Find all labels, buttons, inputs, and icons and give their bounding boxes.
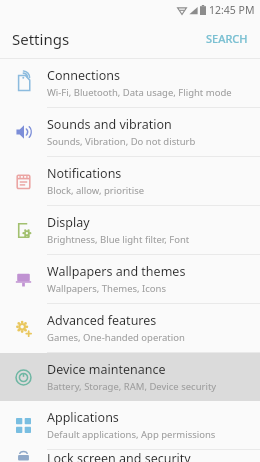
- staticText: 12:45 PM: [209, 3, 255, 17]
- staticText: Notifications: [47, 165, 122, 182]
- other: Advanced features: [15, 320, 32, 337]
- other: Notifications: [15, 173, 32, 190]
- staticText: Wi-Fi, Bluetooth, Data usage, Flight mod…: [47, 86, 232, 99]
- button[interactable]: Wallpapers and themes: [0, 255, 260, 303]
- staticText: SEARCH: [206, 31, 248, 46]
- staticText: Block, allow, prioritise: [47, 184, 145, 197]
- button[interactable]: SEARCH: [194, 22, 260, 55]
- staticText: Games, One-handed operation: [47, 331, 185, 344]
- staticText: Display: [47, 214, 90, 231]
- staticText: Wallpapers, Themes, Icons: [47, 282, 167, 295]
- button[interactable]: Device maintenance: [0, 353, 260, 401]
- other: Lock screen and security: [15, 450, 32, 462]
- staticText: Device maintenance: [47, 361, 166, 378]
- staticText: Advanced features: [47, 312, 157, 329]
- staticText: Battery, Storage, RAM, Device security: [47, 380, 217, 393]
- other: Device maintenance: [15, 369, 32, 386]
- button[interactable]: Advanced features: [0, 304, 260, 352]
- staticText: Applications: [47, 409, 119, 426]
- other: Display: [15, 222, 32, 239]
- staticText: Sounds and vibration: [47, 116, 172, 133]
- staticText: Settings: [12, 29, 70, 49]
- staticText: Sounds, Vibration, Do not disturb: [47, 135, 196, 148]
- other: Applications: [16, 418, 31, 433]
- button[interactable]: Notifications: [0, 157, 260, 205]
- button[interactable]: Applications: [0, 401, 260, 449]
- staticText: Default applications, App permissions: [47, 428, 216, 441]
- other: Sounds and vibration: [15, 123, 33, 141]
- button[interactable]: Sounds and vibration: [0, 108, 260, 156]
- other: Wallpapers and themes: [15, 271, 32, 288]
- other: Connections: [15, 74, 33, 92]
- button[interactable]: Display: [0, 206, 260, 254]
- staticText: Connections: [47, 67, 120, 84]
- staticText: Wallpapers and themes: [47, 263, 186, 280]
- button[interactable]: Connections: [0, 59, 260, 107]
- staticText: Lock screen and security: [47, 450, 191, 462]
- staticText: Brightness, Blue light filter, Font: [47, 233, 190, 246]
- button[interactable]: Lock screen and security: [0, 450, 260, 462]
